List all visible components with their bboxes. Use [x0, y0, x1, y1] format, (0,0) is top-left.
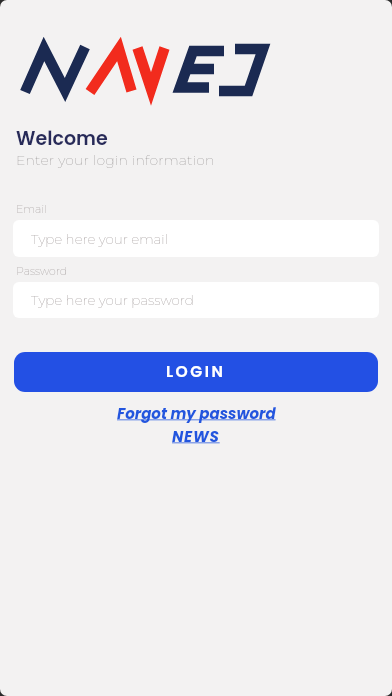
staticText: Type here your password [31, 292, 194, 308]
staticText: Password [16, 264, 68, 277]
button[interactable]: Forgot my password [117, 403, 276, 424]
staticText: Welcome [16, 125, 108, 152]
button[interactable]: Type here your password [13, 282, 379, 318]
button[interactable]: NEWS [172, 426, 220, 447]
button[interactable]: Type here your email [13, 220, 379, 257]
staticText: Email [16, 202, 47, 215]
staticText: Type here your email [31, 231, 169, 247]
button[interactable]: LOGIN [14, 352, 378, 392]
staticText: Enter your login information [16, 151, 215, 168]
staticText: LOGIN [166, 361, 226, 383]
